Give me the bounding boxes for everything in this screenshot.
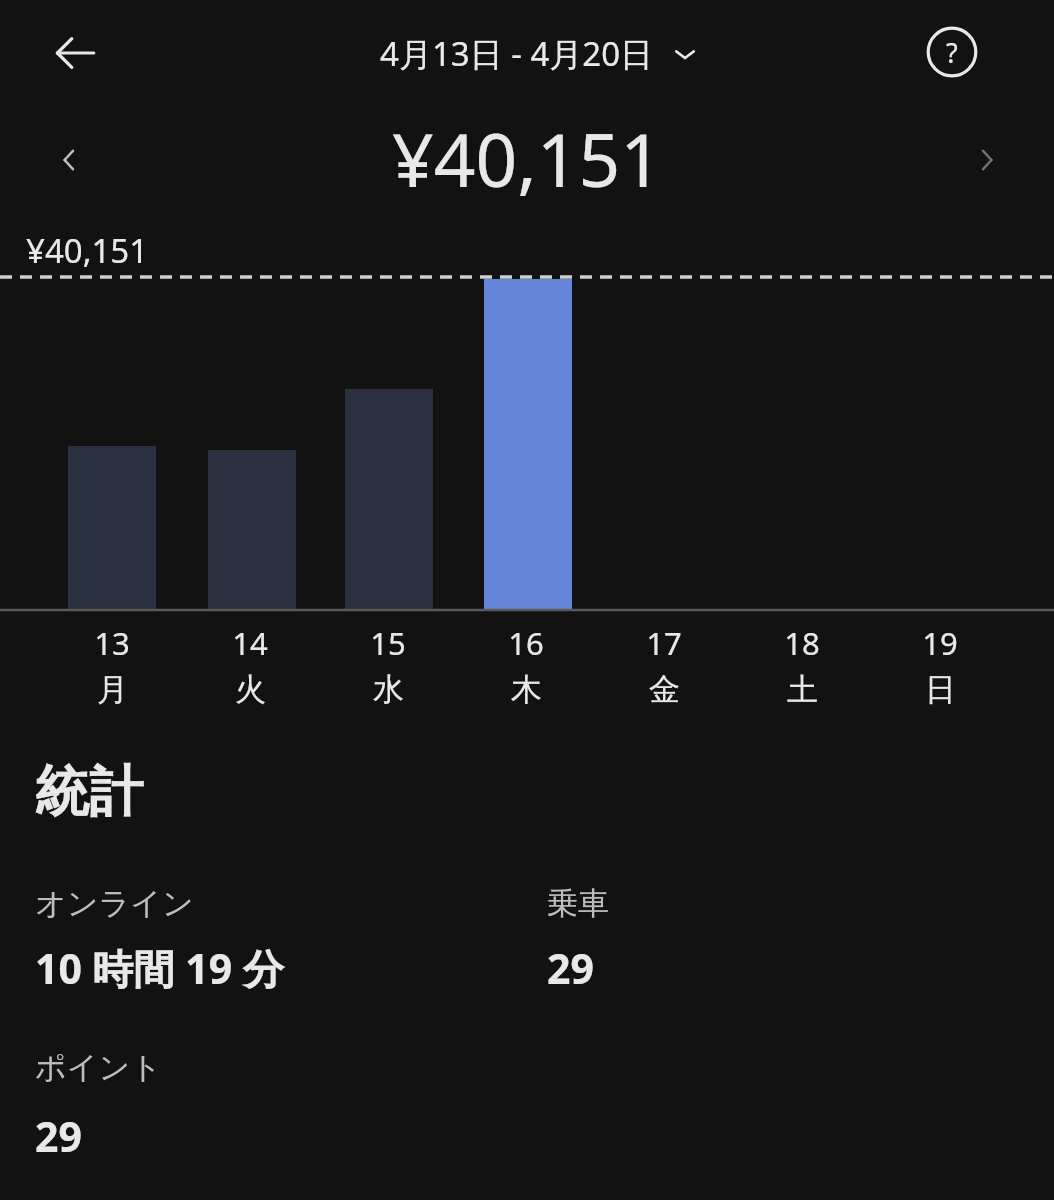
staticText: 15 <box>370 622 406 664</box>
button[interactable]: Previous week <box>36 127 102 193</box>
staticText: 水 <box>373 670 404 709</box>
staticText: 日 <box>925 670 956 709</box>
staticText: 金 <box>649 670 680 709</box>
staticText: 土 <box>787 670 818 709</box>
staticText: 17 <box>646 622 682 664</box>
staticText: 18 <box>784 622 820 664</box>
staticText: ポイント <box>35 1048 162 1087</box>
staticText: 4月13日 - 4月20日 <box>380 31 654 76</box>
button[interactable]: Back <box>40 18 110 88</box>
staticText: 16 <box>508 622 544 664</box>
staticText: 統計 <box>35 758 143 826</box>
staticText: ¥40,151 <box>392 109 663 208</box>
button[interactable]: Next week <box>954 127 1020 193</box>
button[interactable]: 4月13日 - 4月20日 <box>380 31 696 76</box>
staticText: 29 <box>547 940 594 996</box>
staticText: 13 <box>94 622 130 664</box>
staticText: ? <box>946 34 958 71</box>
staticText: 火 <box>235 670 266 709</box>
staticText: 10 時間 19 分 <box>35 940 284 996</box>
button[interactable]: Help <box>917 17 987 87</box>
staticText: 木 <box>511 670 542 709</box>
staticText: 29 <box>35 1108 82 1164</box>
staticText: 14 <box>232 622 268 664</box>
staticText: ¥40,151 <box>26 228 149 273</box>
staticText: 19 <box>922 622 958 664</box>
staticText: 乗車 <box>547 884 609 923</box>
staticText: オンライン <box>35 884 194 923</box>
staticText: 月 <box>97 670 128 709</box>
